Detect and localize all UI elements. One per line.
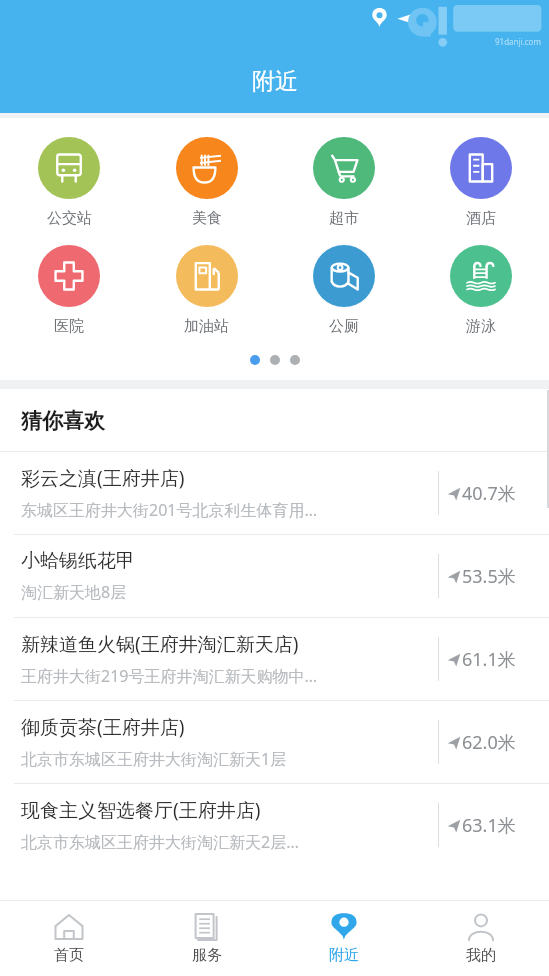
- staticText: 小蛤锡纸花甲: [21, 549, 135, 573]
- button[interactable]: 小蛤锡纸花甲: [0, 534, 549, 617]
- button[interactable]: 加油站: [138, 245, 275, 336]
- staticText: 超市: [329, 209, 359, 228]
- staticText: 酒店: [466, 209, 496, 228]
- staticText: 猜你喜欢: [21, 408, 105, 434]
- button[interactable]: 医院: [0, 245, 138, 336]
- staticText: 游泳: [466, 317, 496, 336]
- staticText: 我的: [466, 946, 496, 965]
- staticText: 公交站: [47, 209, 92, 228]
- button[interactable]: 我的: [412, 901, 549, 976]
- button[interactable]: 美食: [138, 137, 275, 228]
- button[interactable]: 新辣道鱼火锅(王府井淘汇新天店): [0, 617, 549, 700]
- button[interactable]: 超市: [275, 137, 412, 228]
- staticText: 40.7米: [462, 481, 516, 506]
- staticText: 加油站: [184, 317, 229, 336]
- staticText: 东城区王府井大街201号北京利生体育用…: [21, 499, 318, 521]
- button[interactable]: 首页: [0, 901, 138, 976]
- staticText: 御质贡茶(王府井店): [21, 714, 185, 740]
- staticText: 北京市东城区王府井大街淘汇新天2层…: [21, 831, 299, 853]
- button[interactable]: 御质贡茶(王府井店): [0, 700, 549, 783]
- button[interactable]: 游泳: [412, 245, 549, 336]
- staticText: 63.1米: [462, 813, 516, 838]
- staticText: 53.5米: [462, 564, 516, 589]
- staticText: 现食主义智选餐厅(王府井店): [21, 797, 261, 823]
- staticText: 新辣道鱼火锅(王府井淘汇新天店): [21, 631, 299, 657]
- button[interactable]: 酒店: [412, 137, 549, 228]
- button[interactable]: 公厕: [275, 245, 412, 336]
- staticText: 彩云之滇(王府井店): [21, 465, 185, 491]
- staticText: 61.1米: [462, 647, 516, 672]
- staticText: 医院: [54, 317, 84, 336]
- staticText: 附近: [329, 946, 359, 965]
- staticText: 北京市东城区王府井大街淘汇新天1层: [21, 748, 287, 770]
- staticText: 服务: [192, 946, 222, 965]
- staticText: 91danji.com: [495, 36, 541, 47]
- staticText: 公厕: [329, 317, 359, 336]
- button[interactable]: 现食主义智选餐厅(王府井店): [0, 783, 549, 866]
- staticText: 王府井大街219号王府井淘汇新天购物中…: [21, 665, 318, 687]
- button[interactable]: 彩云之滇(王府井店): [0, 452, 549, 534]
- staticText: 附近: [252, 67, 298, 96]
- staticText: 62.0米: [462, 730, 516, 755]
- button[interactable]: 附近: [275, 901, 412, 976]
- staticText: 淘汇新天地8层: [21, 581, 127, 603]
- staticText: 首页: [54, 946, 84, 965]
- staticText: 美食: [192, 209, 222, 228]
- button[interactable]: 公交站: [0, 137, 138, 228]
- button[interactable]: 服务: [138, 901, 275, 976]
